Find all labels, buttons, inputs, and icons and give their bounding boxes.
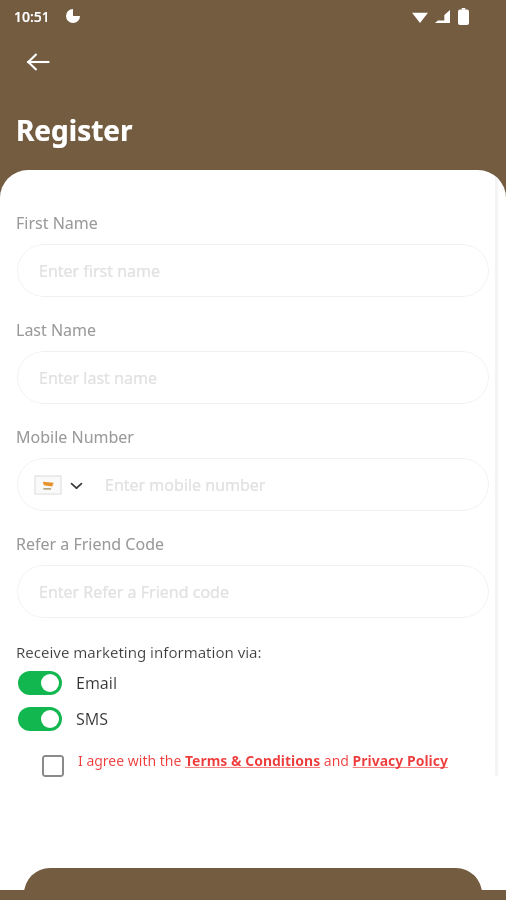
button[interactable]: Enter first name [17,244,489,297]
staticText: Refer a Friend Code [16,533,165,555]
button[interactable]: SMS [18,707,109,731]
staticText: Last Name [16,319,97,341]
staticText: I agree with the Terms & Conditions and … [78,751,448,770]
staticText: Receive marketing information via: [16,642,262,662]
staticText: Enter last name [39,367,157,389]
button[interactable]: Back [18,42,58,82]
staticText: Email [76,672,118,694]
staticText: SMS [76,708,109,730]
staticText: First Name [16,212,98,234]
button[interactable]: Agree to terms checkbox [42,751,490,773]
button[interactable]: Enter last name [17,351,489,404]
staticText: Enter first name [39,260,161,282]
staticText: Register [16,111,133,149]
staticText: Mobile Number [16,426,134,448]
staticText: 10:51 [14,7,50,26]
other: Agree to terms checkbox [42,755,64,777]
button[interactable]: Email [18,671,118,695]
staticText: Enter mobile number [105,474,266,496]
staticText: Enter Refer a Friend code [39,581,229,603]
button[interactable] [24,868,482,900]
button[interactable]: Enter Refer a Friend code [17,565,489,618]
button[interactable]: Select country code [35,476,83,494]
